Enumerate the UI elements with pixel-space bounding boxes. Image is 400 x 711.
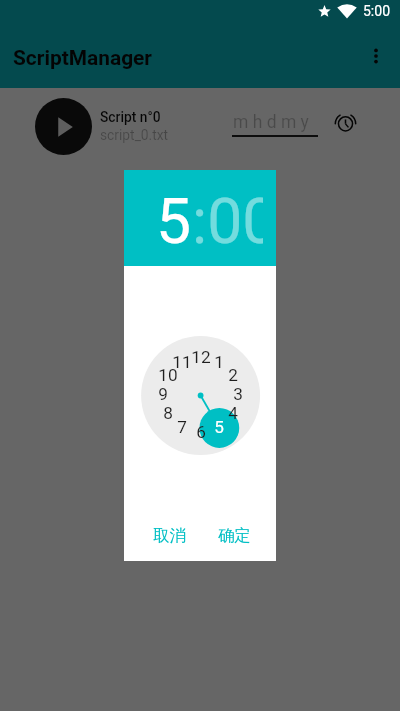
button[interactable]: 确定 bbox=[218, 525, 251, 546]
staticText: script_0.txt bbox=[100, 127, 169, 143]
staticText: 9 bbox=[158, 384, 168, 404]
staticText: 7 bbox=[177, 417, 187, 437]
staticText: Script n°0 bbox=[100, 109, 161, 125]
staticText: 5:00 bbox=[363, 3, 390, 19]
staticText: 5 bbox=[214, 417, 224, 437]
button[interactable]: Script n°0 bbox=[0, 88, 400, 163]
button[interactable]: Set alarm bbox=[322, 104, 369, 141]
staticText: 6 bbox=[196, 422, 206, 442]
staticText: 3 bbox=[233, 384, 243, 404]
staticText: :00 bbox=[192, 185, 263, 258]
button[interactable]: More options bbox=[354, 34, 398, 78]
staticText: 1 bbox=[214, 352, 224, 372]
staticText: ScriptManager bbox=[13, 46, 152, 70]
staticText: 5 bbox=[156, 185, 192, 258]
staticText: 8 bbox=[163, 403, 173, 423]
staticText: m h d m y bbox=[233, 112, 309, 133]
button[interactable]: 取消 bbox=[153, 525, 186, 546]
staticText: 10 bbox=[158, 365, 178, 385]
staticText: 2 bbox=[228, 365, 238, 385]
staticText: 11 bbox=[172, 352, 192, 372]
staticText: 4 bbox=[228, 403, 238, 423]
staticText: 12 bbox=[191, 347, 211, 367]
